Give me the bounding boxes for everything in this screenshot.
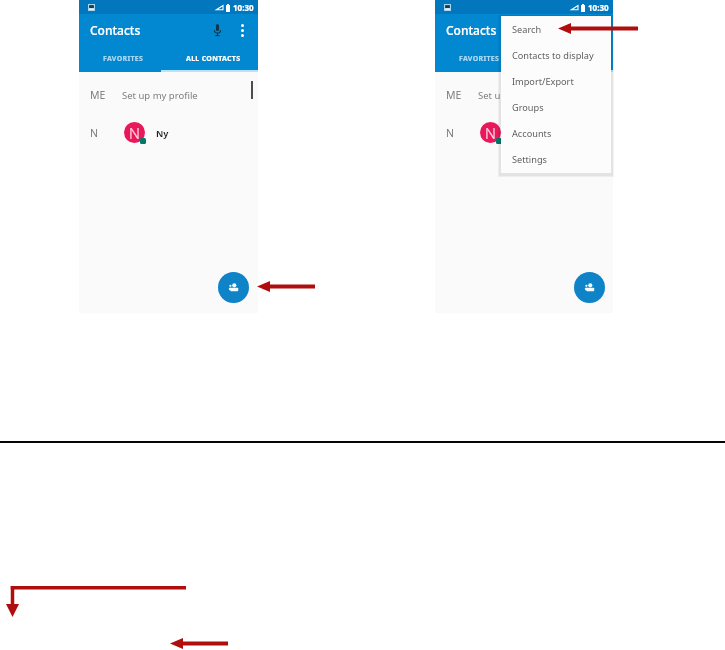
staticText: ALL CONTACTS [186, 54, 241, 64]
button[interactable]: FAVORITES [435, 45, 524, 72]
button[interactable]: Import/Export [501, 68, 611, 94]
staticText: Ny [156, 127, 169, 139]
button[interactable]: More options [590, 22, 606, 38]
staticText: 10:30 [233, 2, 254, 13]
staticText: Contacts to display [512, 49, 594, 62]
staticText: ME [446, 88, 462, 102]
button[interactable]: Groups [501, 94, 611, 120]
button[interactable]: ALL CONTACTS [524, 45, 613, 72]
staticText: Set up my profile [122, 89, 198, 102]
button[interactable]: Add contact [574, 272, 605, 303]
staticText: Accounts [512, 127, 552, 140]
staticText: N [485, 123, 496, 143]
staticText: N [129, 123, 140, 143]
button[interactable]: N [435, 120, 613, 146]
button[interactable]: ME [79, 84, 258, 106]
button[interactable]: ALL CONTACTS [168, 45, 258, 72]
staticText: ME [90, 88, 106, 102]
button[interactable]: Voice search [209, 22, 225, 38]
staticText: Search [512, 23, 542, 36]
staticText: Contacts [90, 22, 141, 38]
staticText: Settings [512, 153, 547, 166]
button[interactable]: FAVORITES [79, 45, 168, 72]
button[interactable]: Add contact [218, 272, 249, 303]
button[interactable]: N [79, 120, 258, 146]
staticText: ALL CONTACTS [541, 54, 596, 64]
staticText: N [446, 126, 454, 140]
staticText: FAVORITES [459, 54, 500, 64]
staticText: Groups [512, 101, 544, 114]
button[interactable]: Search [501, 16, 611, 42]
button[interactable]: Accounts [501, 120, 611, 146]
staticText: N [90, 126, 98, 140]
staticText: Contacts [446, 22, 497, 38]
staticText: Ny [512, 127, 525, 139]
staticText: FAVORITES [103, 54, 144, 64]
staticText: Import/Export [512, 75, 574, 88]
button[interactable]: ME [435, 84, 613, 106]
button[interactable]: More options [234, 22, 250, 38]
button[interactable]: Voice search [565, 22, 581, 38]
staticText: Set up my profile [478, 89, 554, 102]
button[interactable]: Settings [501, 146, 611, 172]
staticText: 10:30 [588, 2, 609, 13]
button[interactable]: Contacts to display [501, 42, 611, 68]
